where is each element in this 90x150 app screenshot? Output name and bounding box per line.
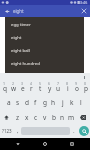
staticText: eight hundred: [11, 60, 40, 66]
button[interactable]: 2: [9, 80, 18, 95]
button[interactable]: Recent apps: [63, 138, 81, 150]
staticText: m: [68, 113, 75, 122]
button[interactable]: 4: [27, 80, 36, 95]
button[interactable]: ?123: [0, 125, 14, 137]
button[interactable]: eight ball: [5, 43, 84, 56]
staticText: w: [11, 84, 17, 93]
staticText: t: [39, 84, 42, 93]
staticText: 1: [3, 81, 6, 86]
staticText: eight: [11, 34, 22, 40]
button[interactable]: s: [13, 95, 22, 110]
staticText: v: [43, 113, 47, 122]
button[interactable]: v: [40, 110, 49, 125]
button[interactable]: g: [40, 95, 49, 110]
staticText: egg timer: [11, 21, 31, 27]
button[interactable]: Shift: [0, 110, 13, 125]
staticText: p: [84, 84, 88, 93]
button[interactable]: Backspace: [76, 110, 90, 125]
button[interactable]: 5: [36, 80, 45, 95]
button[interactable]: j: [58, 95, 67, 110]
staticText: h: [51, 98, 56, 107]
staticText: 9: [75, 81, 78, 86]
button[interactable]: ,: [14, 125, 21, 137]
staticText: 5: [39, 81, 42, 86]
staticText: a: [7, 98, 11, 107]
staticText: 8: [66, 81, 69, 86]
staticText: b: [52, 113, 56, 122]
staticText: 2: [12, 81, 15, 86]
button[interactable]: 6: [45, 80, 54, 95]
staticText: o: [75, 84, 79, 93]
button[interactable]: eight hundred: [5, 56, 84, 69]
button[interactable]: 8: [63, 80, 72, 95]
button[interactable]: Keyboard options: [82, 75, 86, 79]
button[interactable]: 7: [54, 80, 63, 95]
staticText: u: [56, 84, 61, 93]
staticText: g: [43, 98, 47, 107]
staticText: 7: [57, 81, 60, 86]
staticText: x: [25, 113, 29, 122]
button[interactable]: Back: [0, 5, 14, 17]
button[interactable]: x: [22, 110, 31, 125]
staticText: c: [34, 113, 38, 122]
button[interactable]: n: [58, 110, 67, 125]
staticText: 4: [30, 81, 33, 86]
button[interactable]: eight: [5, 30, 84, 43]
staticText: z: [16, 113, 20, 122]
button[interactable]: z: [13, 110, 22, 125]
button[interactable]: Home: [36, 138, 54, 150]
button[interactable]: Clear query: [78, 5, 90, 17]
staticText: eight ball: [11, 47, 30, 53]
staticText: f: [34, 98, 37, 107]
button[interactable]: a: [4, 95, 13, 110]
staticText: j: [62, 98, 64, 107]
staticText: d: [25, 98, 29, 107]
button[interactable]: .: [70, 125, 78, 137]
staticText: 0: [84, 81, 87, 86]
button[interactable]: 1: [0, 80, 9, 95]
button[interactable]: d: [22, 95, 31, 110]
staticText: r: [30, 84, 33, 93]
button[interactable]: Back: [9, 138, 27, 150]
button[interactable]: l: [76, 95, 85, 110]
staticText: 13:46: [78, 0, 88, 5]
button[interactable]: 0: [81, 80, 90, 95]
button[interactable]: b: [49, 110, 58, 125]
staticText: q: [3, 84, 7, 93]
staticText: y: [48, 84, 52, 93]
button[interactable]: h: [49, 95, 58, 110]
staticText: ,: [17, 127, 19, 135]
staticText: 3: [21, 81, 24, 86]
staticText: l: [80, 98, 82, 107]
staticText: k: [70, 98, 74, 107]
button[interactable]: 9: [72, 80, 81, 95]
button[interactable]: Search: [78, 125, 90, 137]
button[interactable]: m: [67, 110, 76, 125]
button[interactable]: k: [67, 95, 76, 110]
staticText: .: [73, 127, 75, 135]
staticText: s: [16, 98, 20, 107]
staticText: n: [60, 113, 65, 122]
button[interactable]: 3: [18, 80, 27, 95]
staticText: ?123: [2, 128, 12, 134]
button[interactable]: f: [31, 95, 40, 110]
staticText: eight: [13, 8, 24, 14]
staticText: e: [21, 84, 25, 93]
staticText: 6: [48, 81, 51, 86]
button[interactable]: egg timer: [5, 17, 84, 30]
button[interactable]: c: [31, 110, 40, 125]
staticText: i: [67, 84, 69, 93]
